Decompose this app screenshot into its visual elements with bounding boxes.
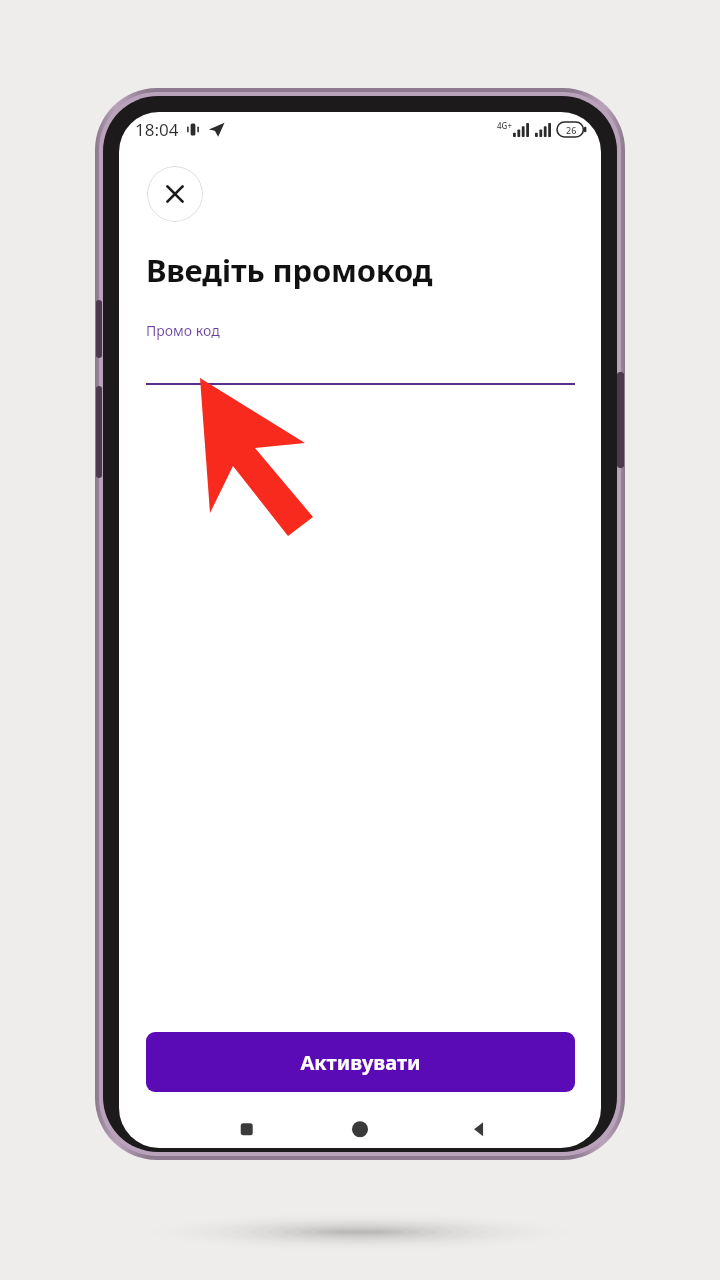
button[interactable]: Активувати: [146, 1032, 575, 1092]
staticText: 26: [566, 124, 577, 136]
staticText: Промо код: [146, 321, 220, 340]
staticText: Введіть промокод: [146, 249, 433, 291]
staticText: Активувати: [300, 1049, 421, 1076]
button[interactable]: Поле промокоду: [146, 340, 575, 385]
staticText: 18:04: [135, 118, 179, 141]
staticText: 4G+: [497, 120, 512, 131]
button[interactable]: Закрити: [147, 166, 203, 222]
